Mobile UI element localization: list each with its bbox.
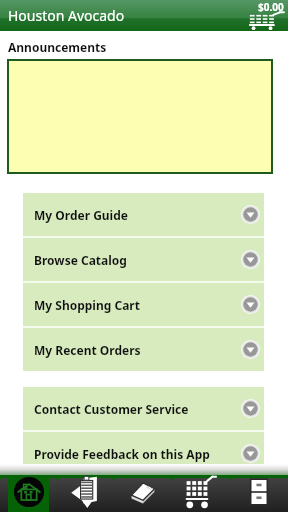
button[interactable]: Shopping cart, $0.00 bbox=[244, 0, 288, 31]
button[interactable]: Order Guide bbox=[57, 475, 114, 512]
button[interactable]: Contact Customer Service bbox=[23, 387, 264, 430]
staticText: My Recent Orders bbox=[34, 342, 241, 358]
staticText: My Shopping Cart bbox=[34, 297, 241, 313]
button[interactable]: My Shopping Cart bbox=[23, 283, 264, 326]
staticText: Browse Catalog bbox=[34, 252, 241, 268]
staticText: My Order Guide bbox=[34, 207, 241, 223]
button[interactable]: Provide Feedback on this App bbox=[23, 432, 264, 475]
staticText: $0.00 bbox=[258, 0, 284, 14]
button[interactable]: Files bbox=[230, 475, 288, 512]
staticText: Provide Feedback on this App bbox=[34, 446, 241, 462]
button[interactable]: Home bbox=[0, 475, 57, 512]
staticText: Houston Avocado bbox=[8, 6, 125, 25]
staticText: Announcements bbox=[8, 39, 107, 55]
button[interactable]: Shopping Cart bbox=[172, 475, 230, 512]
button[interactable]: Browse Catalog bbox=[23, 238, 264, 281]
button[interactable]: My Order Guide bbox=[23, 193, 264, 236]
button[interactable]: Catalog bbox=[114, 475, 172, 512]
button[interactable]: My Recent Orders bbox=[23, 328, 264, 371]
staticText: Contact Customer Service bbox=[34, 401, 241, 417]
